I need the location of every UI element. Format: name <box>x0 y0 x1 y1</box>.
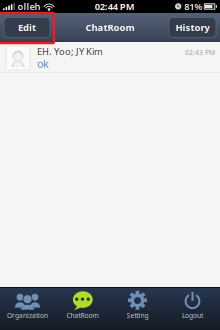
staticText: 02:44 PM <box>95 0 135 13</box>
button[interactable]: EH. Yoo; JY Kim <box>0 42 220 72</box>
staticText: Logout <box>182 311 203 320</box>
button[interactable]: Organization <box>0 288 55 330</box>
staticText: 81% <box>184 0 202 13</box>
staticText: ChatRoom <box>66 311 98 320</box>
button[interactable]: ChatRoom <box>55 288 110 330</box>
staticText: 02:43 PM <box>185 48 215 57</box>
staticText: EH. Yoo; JY Kim <box>37 45 103 58</box>
button[interactable]: Edit <box>4 17 50 37</box>
staticText: Organization <box>7 311 48 320</box>
staticText: ok <box>37 56 49 71</box>
staticText: olleh <box>17 0 40 13</box>
staticText: History <box>175 21 209 34</box>
button[interactable]: History <box>169 17 216 37</box>
button[interactable]: Setting <box>110 288 165 330</box>
staticText: Edit <box>18 21 36 34</box>
staticText: Setting <box>126 311 148 320</box>
button[interactable]: Logout <box>165 288 220 330</box>
staticText: ChatRoom <box>85 21 134 34</box>
